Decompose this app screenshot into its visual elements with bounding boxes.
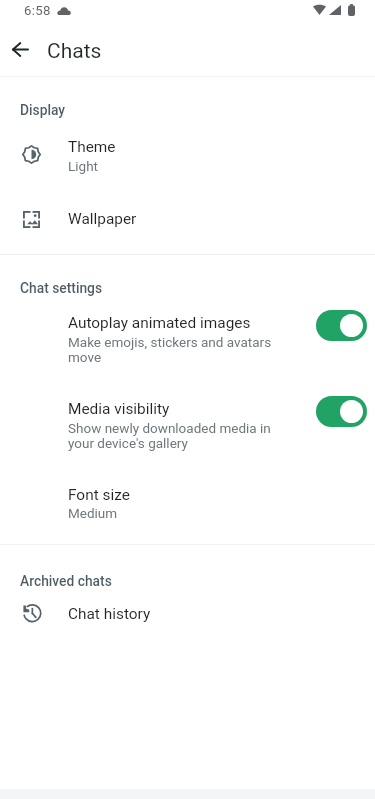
staticText: Chat history (68, 605, 151, 623)
staticText: Wallpaper (68, 210, 137, 228)
button[interactable] (0, 470, 375, 528)
staticText: Display (20, 102, 66, 118)
button[interactable] (0, 592, 375, 636)
staticText: Archived chats (20, 573, 112, 589)
staticText: Chat settings (20, 280, 103, 296)
staticText: Font size (68, 486, 130, 504)
staticText: Make emojis, stickers and avatars move (68, 334, 272, 366)
button[interactable]: Back (2, 31, 38, 67)
staticText: Medium (68, 505, 118, 521)
button[interactable]: Toggle setting (316, 396, 367, 427)
button[interactable]: Toggle setting (316, 310, 367, 341)
staticText: Media visibility (68, 400, 170, 418)
button[interactable] (0, 131, 375, 179)
button[interactable] (0, 306, 375, 374)
staticText: 6:58 (24, 3, 51, 18)
button[interactable] (0, 199, 375, 243)
staticText: Light (68, 158, 98, 174)
button[interactable] (0, 385, 375, 453)
staticText: Show newly downloaded media in your devi… (68, 420, 271, 452)
staticText: Autoplay animated images (68, 314, 251, 332)
staticText: Chats (47, 39, 102, 64)
staticText: Theme (68, 138, 116, 156)
